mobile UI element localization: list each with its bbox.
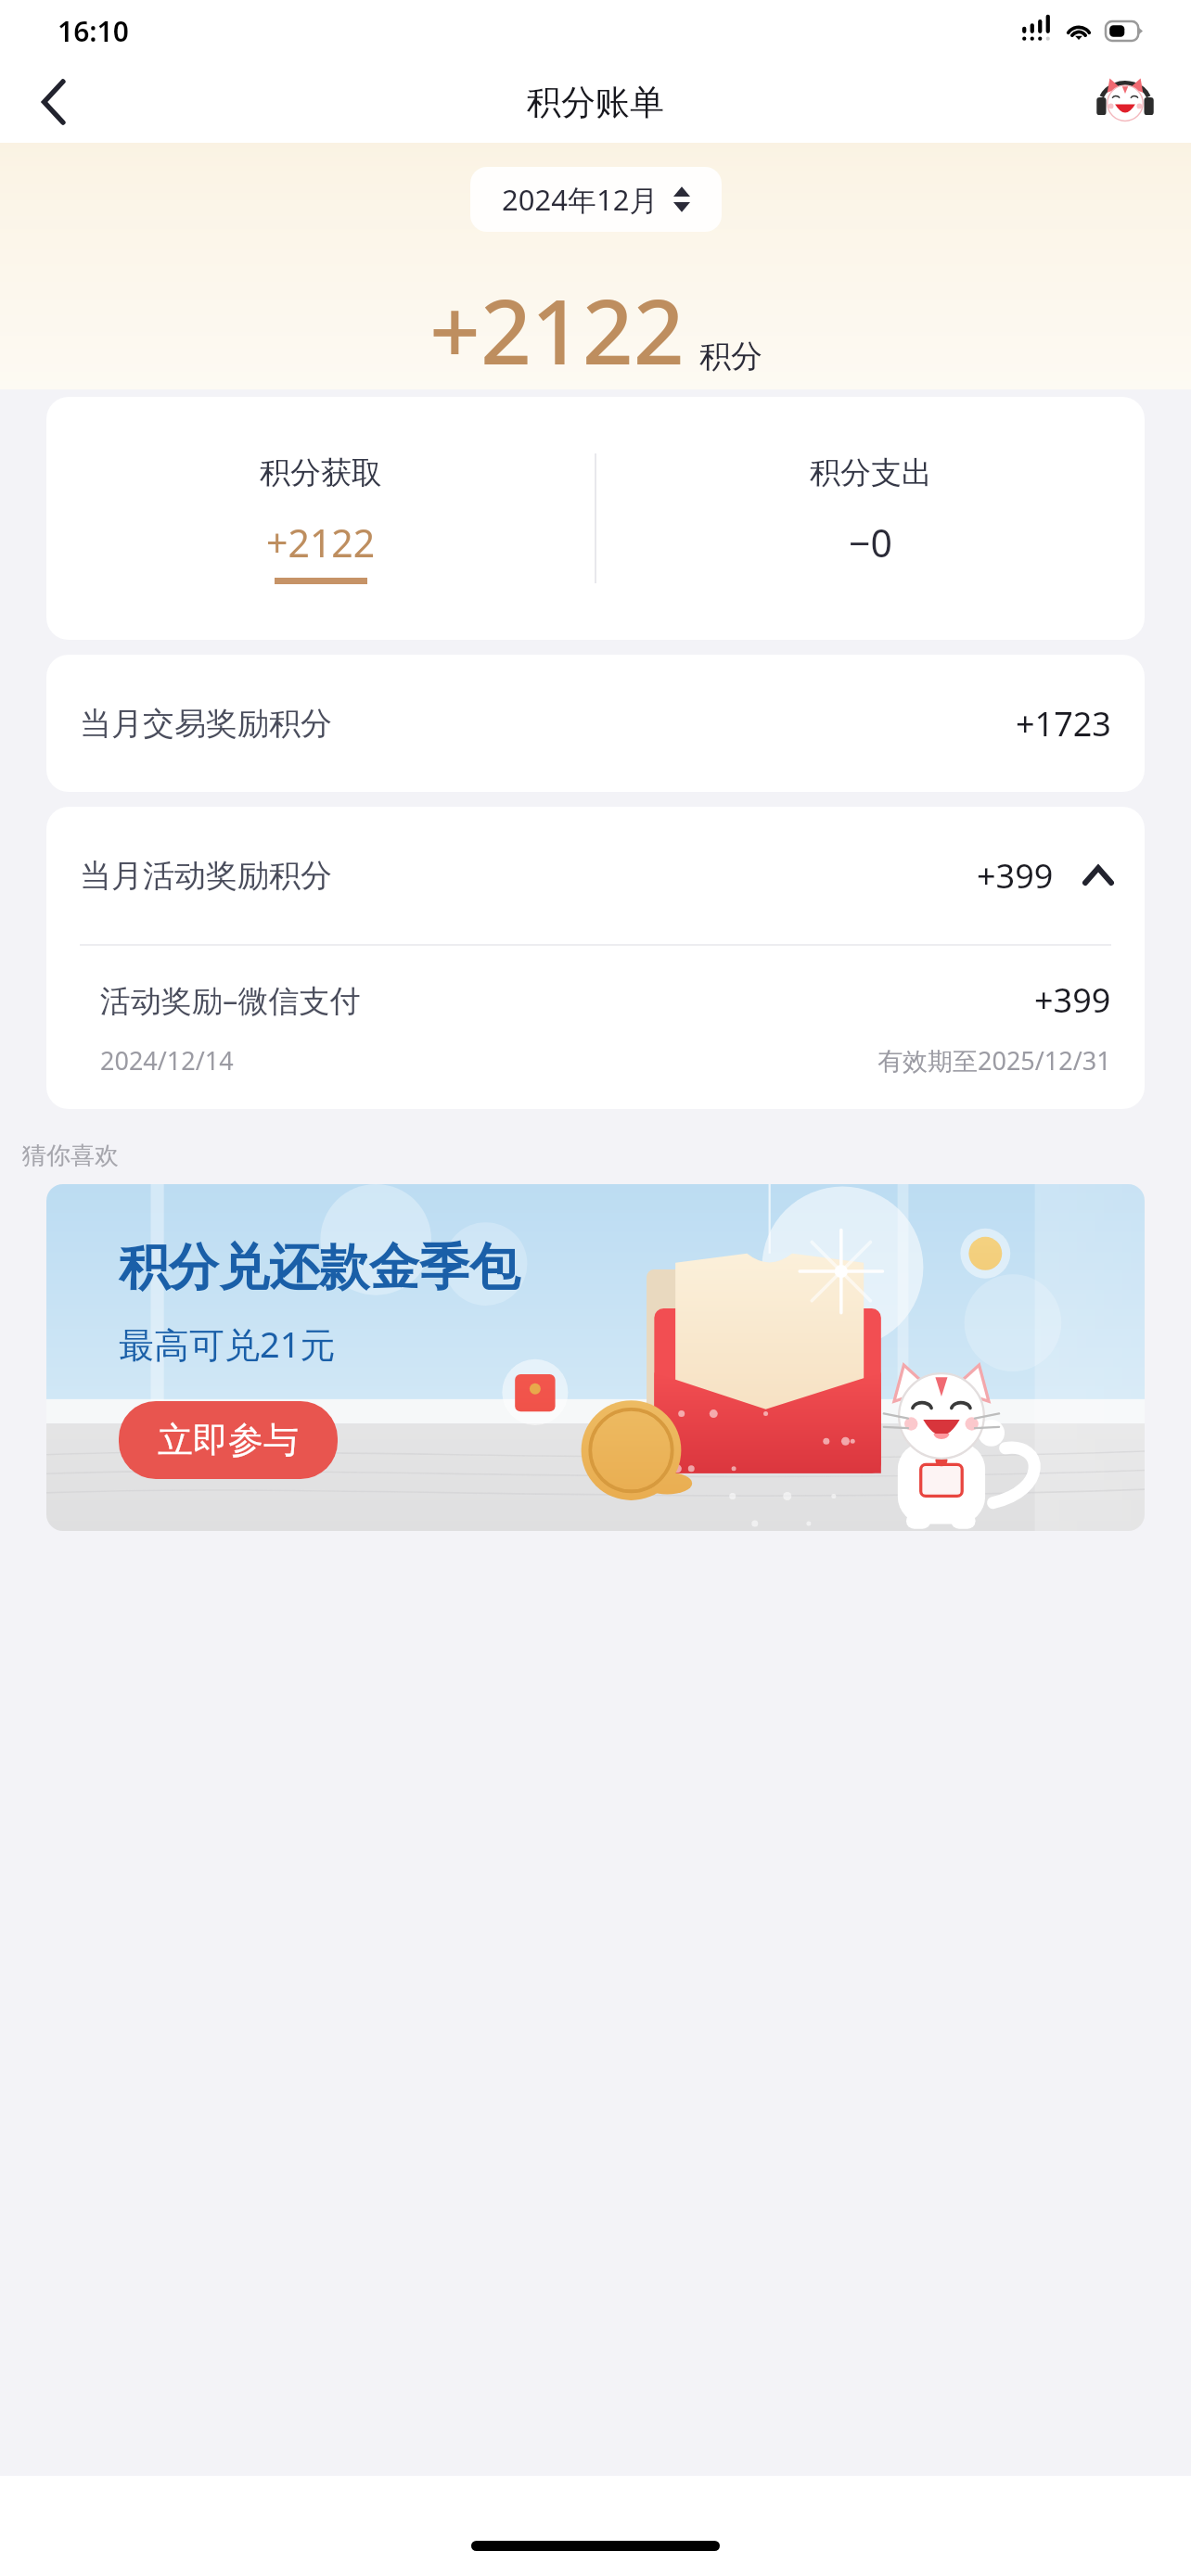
- staticText: +2122: [266, 516, 376, 568]
- staticText: 积分支出: [810, 453, 932, 492]
- button[interactable]: 当月活动奖励积分: [46, 807, 1145, 944]
- staticText: 2024年12月: [502, 180, 659, 219]
- other: Collapse: [1080, 857, 1117, 894]
- staticText: 积分账单: [527, 81, 664, 124]
- button[interactable]: 当月交易奖励积分: [46, 655, 1145, 792]
- staticText: 积分: [699, 337, 762, 376]
- button[interactable]: 积分获取: [46, 397, 1145, 640]
- button[interactable]: Back: [20, 69, 87, 135]
- staticText: 积分兑还款金季包: [119, 1236, 519, 1299]
- staticText: 立即参与: [158, 1418, 299, 1462]
- staticText: +2122: [429, 269, 685, 389]
- button[interactable]: Customer service: [1091, 68, 1159, 136]
- staticText: −0: [849, 516, 892, 568]
- button[interactable]: 积分兑还款金季包: [46, 1184, 1145, 1531]
- staticText: 有效期至2025/12/31: [877, 1043, 1111, 1078]
- staticText: +399: [1034, 977, 1111, 1023]
- staticText: 最高可兑21元: [119, 1320, 336, 1368]
- staticText: 2024/12/14: [100, 1043, 234, 1078]
- staticText: 当月交易奖励积分: [80, 704, 332, 744]
- staticText: 16:10: [58, 12, 129, 50]
- button[interactable]: 立即参与: [119, 1401, 338, 1479]
- button[interactable]: 2024年12月: [470, 167, 722, 232]
- button[interactable]: 活动奖励–微信支付: [46, 946, 1145, 1109]
- staticText: 积分获取: [260, 453, 382, 492]
- staticText: 猜你喜欢: [22, 1141, 119, 1171]
- staticText: 活动奖励–微信支付: [100, 979, 361, 1021]
- staticText: +1723: [1016, 701, 1111, 746]
- staticText: 当月活动奖励积分: [80, 856, 332, 896]
- staticText: +399: [977, 853, 1054, 899]
